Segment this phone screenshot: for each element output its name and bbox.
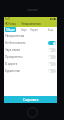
staticText: Общие: [6, 28, 15, 32]
staticText: Уведомления: [21, 22, 41, 26]
staticText: Не беспокоить: [5, 41, 48, 45]
staticText: Будильник: [5, 69, 48, 73]
button[interactable]: Экран: [30, 28, 38, 32]
button[interactable]: Приоритеты: [4, 53, 57, 60]
button[interactable]: Общие: [5, 27, 16, 32]
button[interactable]: Еще: [48, 28, 54, 32]
staticText: Уведомления: [5, 34, 56, 38]
button[interactable]: Не беспокоить: [4, 39, 57, 46]
button[interactable]: Будильник: [4, 67, 57, 74]
staticText: 9:41: [5, 17, 11, 20]
button[interactable]: On: [48, 41, 56, 45]
staticText: В дороге: [5, 62, 48, 66]
staticText: Приоритеты: [5, 55, 48, 59]
staticText: Назад: [8, 22, 16, 26]
staticText: Звук связи: [5, 48, 48, 52]
button[interactable]: Уведомления: [4, 32, 57, 39]
button[interactable]: Off: [48, 69, 56, 73]
button[interactable]: Сохранить: [4, 96, 57, 103]
staticText: ▮▮ ■: [50, 17, 56, 20]
staticText: Сохранить: [23, 98, 39, 102]
button[interactable]: Звук: [21, 28, 27, 32]
button[interactable]: Звук связи: [4, 46, 57, 53]
button[interactable]: Назад: [4, 20, 17, 27]
button[interactable]: Off: [48, 48, 56, 52]
button[interactable]: Off: [48, 55, 56, 59]
button[interactable]: Off: [48, 62, 56, 66]
button[interactable]: В дороге: [4, 60, 57, 67]
